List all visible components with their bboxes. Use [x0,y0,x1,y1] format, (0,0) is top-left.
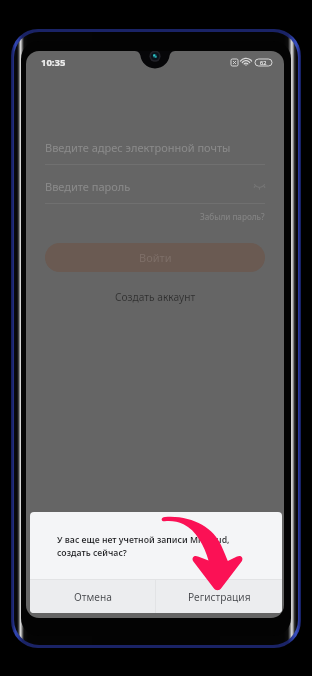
staticText: 62 [260,59,267,66]
button[interactable]: Регистрация [156,580,282,613]
staticText: 10:35 [41,56,66,69]
button[interactable]: Введите пароль [45,179,265,204]
staticText: Регистрация [188,590,251,604]
staticText: Отмена [74,590,112,604]
button[interactable]: Забыли пароль? [200,208,265,225]
staticText: У вас еще нет учетной записи Mi Cloud, с… [57,534,230,558]
staticText: Введите пароль [45,179,131,194]
button[interactable]: Введите адрес электронной почты [45,140,265,165]
button[interactable]: Войти [45,243,265,272]
button[interactable]: Создать аккаунт [112,287,199,307]
button[interactable]: Отмена [30,580,155,613]
staticText: Введите адрес электронной почты [45,140,231,155]
staticText: Войти [139,250,172,265]
